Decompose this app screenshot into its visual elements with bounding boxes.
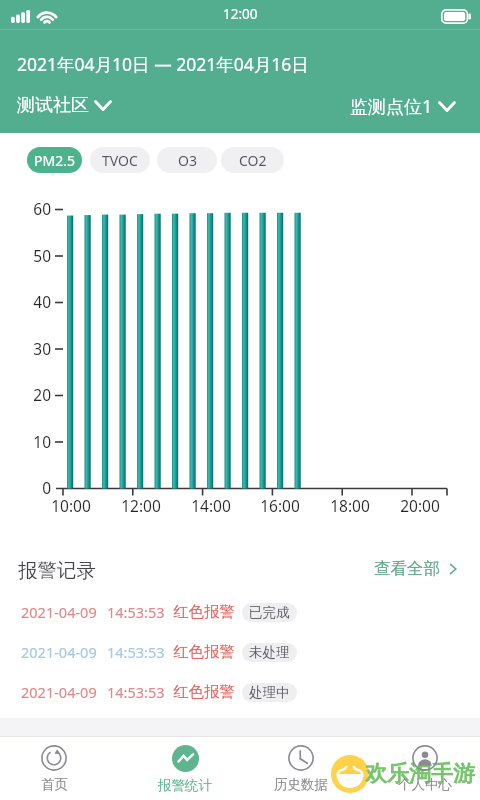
button[interactable]: 首页 [7, 742, 101, 793]
staticText: 0 [0, 477, 51, 498]
staticText: 60 [0, 198, 51, 219]
staticText: 50 [0, 245, 51, 266]
staticText: 2021-04-09 [21, 682, 97, 702]
staticText: 红色报警 [173, 602, 235, 622]
button[interactable]: TVOC [90, 147, 150, 173]
button[interactable]: 个人中心 [378, 742, 472, 793]
other: 首页 [41, 745, 67, 771]
staticText: 报警统计 [158, 777, 212, 794]
staticText: 30 [0, 338, 51, 359]
staticText: 12:00 [115, 495, 167, 516]
button[interactable]: 2021-04-09 [0, 641, 480, 663]
staticText: 红色报警 [173, 682, 235, 702]
staticText: PM2.5 [34, 151, 75, 170]
staticText: 查看全部 [374, 558, 440, 579]
staticText: 10:00 [45, 495, 97, 516]
button[interactable]: 监测点位1 [350, 94, 456, 119]
other: 个人中心 [412, 745, 438, 771]
staticText: 20:00 [394, 495, 446, 516]
staticText: 14:53:53 [107, 682, 165, 702]
button[interactable]: 报警统计 [138, 742, 232, 794]
staticText: 14:53:53 [107, 642, 165, 662]
button[interactable]: CO2 [221, 147, 284, 173]
staticText: 监测点位1 [350, 94, 433, 119]
staticText: 已完成 [249, 604, 290, 621]
staticText: 16:00 [254, 495, 306, 516]
staticText: 40 [0, 291, 51, 312]
staticText: 个人中心 [398, 776, 452, 793]
staticText: 20 [0, 384, 51, 405]
staticText: 12:00 [223, 5, 258, 23]
staticText: 欢乐淘手游 [365, 760, 475, 788]
staticText: TVOC [102, 151, 138, 170]
staticText: 未处理 [249, 644, 290, 661]
staticText: 14:53:53 [107, 602, 165, 622]
button[interactable]: O3 [157, 147, 217, 173]
staticText: CO2 [239, 151, 267, 170]
button[interactable]: 测试社区 [17, 94, 112, 117]
other: 报警统计 [172, 745, 199, 772]
other: 历史数据 [288, 745, 314, 771]
button[interactable]: 查看全部 [374, 558, 460, 579]
button[interactable]: 2021-04-09 [0, 681, 480, 703]
button[interactable]: PM2.5 [27, 147, 82, 173]
staticText: 14:00 [185, 495, 237, 516]
staticText: 2021-04-09 [21, 602, 97, 622]
staticText: 10 [0, 431, 51, 452]
staticText: 2021-04-09 [21, 642, 97, 662]
staticText: 18:00 [324, 495, 376, 516]
button[interactable]: 2021-04-09 [0, 601, 480, 623]
staticText: 历史数据 [274, 776, 328, 793]
button[interactable]: 历史数据 [254, 742, 348, 793]
staticText: 首页 [41, 776, 68, 793]
staticText: 报警记录 [18, 558, 96, 583]
staticText: 处理中 [249, 684, 290, 701]
staticText: 2021年04月10日 — 2021年04月16日 [17, 52, 309, 76]
staticText: 红色报警 [173, 642, 235, 662]
staticText: 测试社区 [17, 94, 89, 117]
staticText: O3 [178, 151, 197, 170]
